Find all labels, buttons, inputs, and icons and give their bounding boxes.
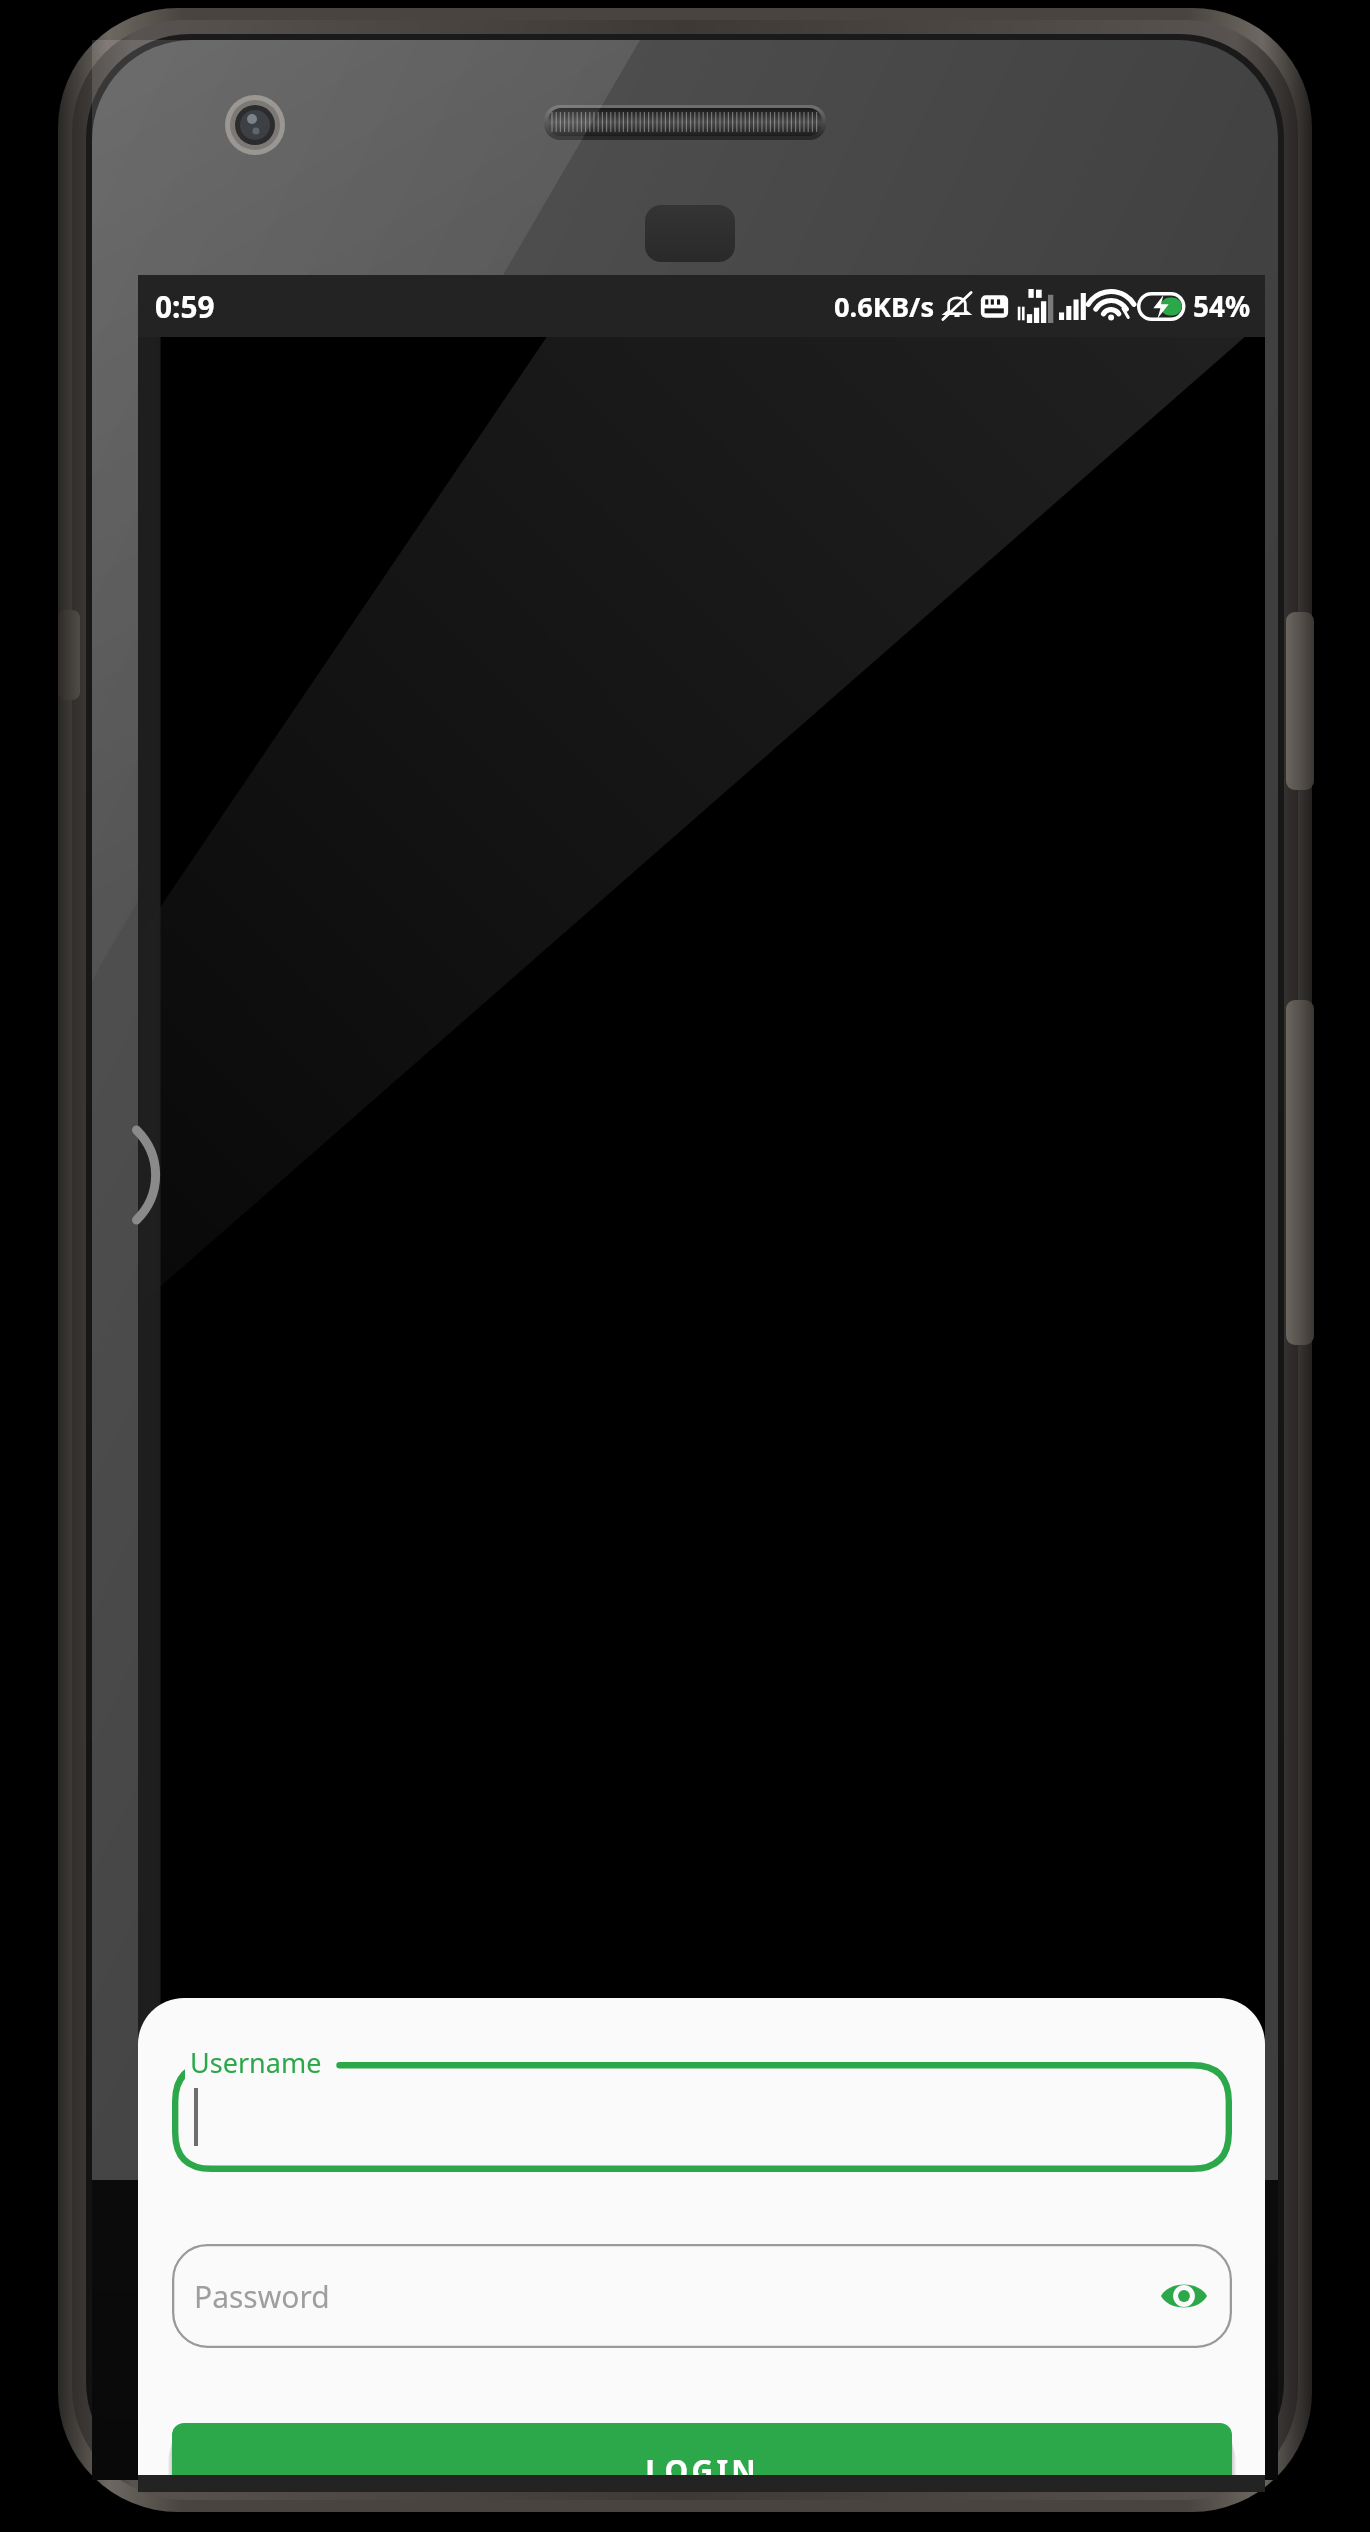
- staticText: LOGIN: [645, 2450, 759, 2475]
- button[interactable]: LOGIN: [172, 2423, 1232, 2475]
- button[interactable]: Show password: [1156, 2268, 1212, 2324]
- button[interactable]: [172, 2062, 1232, 2172]
- staticText: 0.6KB/s: [834, 288, 935, 325]
- staticText: Username: [190, 2044, 322, 2081]
- staticText: 0:59: [155, 286, 215, 327]
- staticText: Password: [194, 2276, 330, 2317]
- staticText: 54%: [1193, 287, 1251, 325]
- button[interactable]: Password: [172, 2244, 1232, 2348]
